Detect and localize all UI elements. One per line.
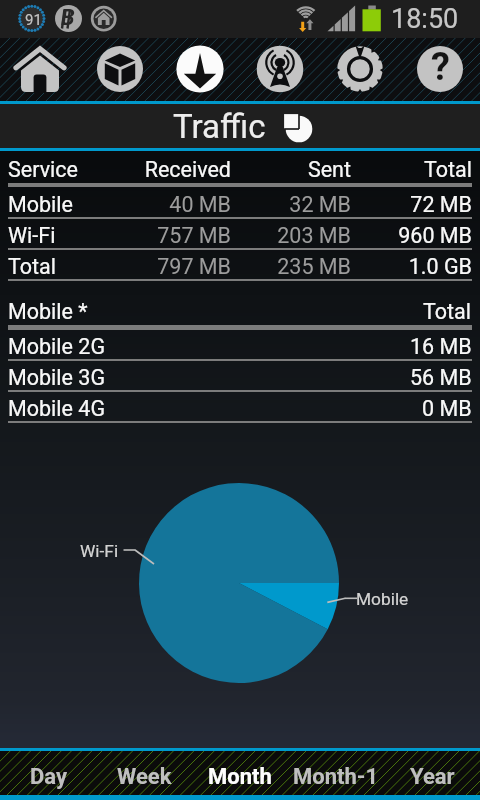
staticText: ? [431,45,450,90]
staticText: 16 MB [410,334,472,359]
button[interactable]: Home [0,38,80,101]
staticText: 72 MB [351,192,472,217]
staticText: 203 MB [231,223,351,248]
staticText: Mobile 3G [8,365,410,390]
button[interactable]: Day [0,751,96,795]
button[interactable]: Network [240,38,320,101]
staticText: 91 [25,11,42,29]
staticText: Wi-Fi [8,223,56,248]
staticText: 797 MB [98,254,231,279]
staticText: Wi-Fi [80,541,119,561]
staticText: Total [423,299,472,324]
staticText: Day [30,764,67,790]
button[interactable]: Status [320,38,400,101]
staticText: 960 MB [351,223,472,248]
staticText: 32 MB [231,192,351,217]
staticText: 0 MB [422,396,472,421]
staticText: Month-1 [293,764,379,790]
staticText: 40 MB [98,192,231,217]
staticText: Mobile [356,589,409,609]
staticText: Mobile 2G [8,334,410,359]
staticText: Mobile [8,192,73,217]
button[interactable]: Month-1 [288,751,384,795]
staticText: Service [8,157,78,182]
button[interactable]: Apps [80,38,160,101]
staticText: 757 MB [98,223,231,248]
staticText: Year [410,764,455,790]
staticText: Traffic [173,107,266,146]
staticText: B [61,5,75,31]
staticText: Received [98,157,231,182]
staticText: Mobile * [8,299,423,324]
staticText: Month [208,764,272,790]
button[interactable]: Week [96,751,192,795]
staticText: Sent [231,157,351,182]
staticText: 18:50 [391,3,459,35]
button[interactable]: Year [384,751,480,795]
staticText: 235 MB [231,254,351,279]
button[interactable]: Month [192,751,288,795]
staticText: 1.0 GB [351,254,472,279]
button[interactable]: Help [400,38,480,101]
staticText: Mobile 4G [8,396,422,421]
staticText: Week [117,764,172,790]
button[interactable]: Downloads [160,38,240,101]
staticText: Total [351,157,472,182]
staticText: Total [8,254,57,279]
staticText: 56 MB [410,365,472,390]
